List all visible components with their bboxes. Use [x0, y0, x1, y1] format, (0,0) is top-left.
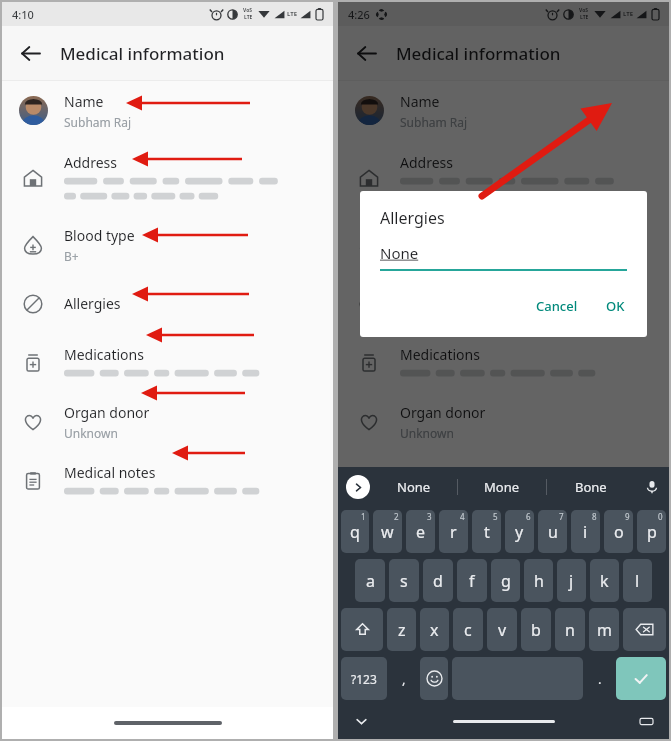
- button[interactable]: e: [406, 510, 435, 553]
- staticText: 0: [658, 511, 663, 522]
- button[interactable]: k: [590, 559, 619, 602]
- button[interactable]: Medical notes: [2, 451, 333, 510]
- staticText: z: [398, 619, 406, 641]
- button[interactable]: c: [453, 608, 483, 651]
- button[interactable]: q: [341, 510, 369, 553]
- staticText: h: [534, 570, 544, 592]
- staticText: b: [531, 619, 541, 641]
- button[interactable]: u: [538, 510, 567, 553]
- button[interactable]: b: [521, 608, 551, 651]
- staticText: d: [433, 570, 443, 592]
- staticText: a: [366, 570, 375, 592]
- other: Shift: [354, 621, 371, 638]
- staticText: v: [498, 619, 507, 641]
- button[interactable]: Bone: [547, 467, 635, 507]
- button[interactable]: Organ donor: [2, 392, 333, 451]
- staticText: B+: [64, 248, 79, 264]
- other: Emoji: [426, 670, 443, 687]
- button[interactable]: OK: [596, 289, 635, 323]
- button[interactable]: Back: [10, 33, 50, 73]
- button[interactable]: Medical notes: [338, 451, 669, 510]
- button[interactable]: Shift: [341, 608, 383, 651]
- button[interactable]: Expand toolbar: [346, 475, 370, 499]
- button[interactable]: t: [472, 510, 501, 553]
- staticText: Organ donor: [64, 403, 150, 422]
- staticText: OK: [606, 297, 625, 315]
- button[interactable]: Medications: [338, 333, 669, 392]
- staticText: Allergies: [380, 207, 445, 229]
- staticText: Blood type: [64, 226, 135, 245]
- button[interactable]: Enter: [616, 657, 666, 700]
- staticText: i: [583, 521, 588, 543]
- button[interactable]: z: [387, 608, 416, 651]
- button[interactable]: Medications: [2, 333, 333, 392]
- button[interactable]: d: [423, 559, 453, 602]
- button[interactable]: h: [524, 559, 553, 602]
- button[interactable]: Name: [2, 81, 333, 140]
- button[interactable]: v: [487, 608, 517, 651]
- button[interactable]: Voice input: [635, 467, 669, 507]
- staticText: c: [464, 619, 472, 641]
- staticText: n: [565, 619, 575, 641]
- button[interactable]: Blood type: [338, 215, 669, 274]
- staticText: Address: [64, 153, 117, 172]
- staticText: w: [381, 521, 394, 543]
- staticText: 3: [427, 511, 432, 522]
- button[interactable]: y: [505, 510, 534, 553]
- staticText: Medications: [400, 345, 480, 364]
- staticText: None: [380, 243, 419, 263]
- staticText: LTE: [580, 14, 589, 21]
- button[interactable]: n: [555, 608, 585, 651]
- button[interactable]: Back: [346, 33, 386, 73]
- button[interactable]: w: [373, 510, 402, 553]
- staticText: None: [397, 478, 431, 496]
- button[interactable]: Emoji: [420, 657, 448, 700]
- button[interactable]: Change keyboard: [623, 703, 669, 739]
- button[interactable]: .: [587, 657, 612, 700]
- button[interactable]: a: [355, 559, 385, 602]
- button[interactable]: Organ donor: [338, 392, 669, 451]
- staticText: j: [569, 570, 574, 592]
- button[interactable]: f: [457, 559, 487, 602]
- button[interactable]: r: [439, 510, 468, 553]
- button[interactable]: ,: [391, 657, 416, 700]
- button[interactable]: p: [637, 510, 666, 553]
- button[interactable]: m: [589, 608, 619, 651]
- staticText: Mone: [484, 478, 520, 496]
- staticText: Bone: [575, 478, 607, 496]
- button[interactable]: Cancel: [526, 289, 588, 323]
- button[interactable]: s: [389, 559, 419, 602]
- button[interactable]: g: [491, 559, 520, 602]
- staticText: LTE: [287, 10, 298, 18]
- staticText: q: [350, 521, 360, 543]
- staticText: Medical information: [60, 42, 225, 65]
- staticText: 2: [394, 511, 399, 522]
- button[interactable]: Name: [338, 81, 669, 140]
- button[interactable]: Mone: [458, 467, 546, 507]
- staticText: Subham Raj: [64, 114, 132, 130]
- staticText: Subham Raj: [400, 114, 468, 130]
- button[interactable]: i: [571, 510, 600, 553]
- button[interactable]: l: [623, 559, 652, 602]
- staticText: .: [598, 670, 602, 688]
- staticText: B+: [400, 248, 415, 264]
- button[interactable]: Backspace: [623, 608, 666, 651]
- button[interactable]: x: [420, 608, 449, 651]
- button[interactable]: o: [604, 510, 633, 553]
- staticText: Medications: [64, 345, 144, 364]
- button[interactable]: Address: [338, 140, 669, 215]
- button[interactable]: Allergies: [2, 274, 333, 333]
- button[interactable]: Address: [2, 140, 333, 215]
- button[interactable]: Blood type: [2, 215, 333, 274]
- staticText: ,: [402, 670, 406, 688]
- button[interactable]: Allergies: [338, 274, 669, 333]
- staticText: 1: [361, 511, 366, 522]
- button[interactable]: ?123: [341, 657, 387, 700]
- button[interactable]: Hide keyboard: [338, 703, 384, 739]
- staticText: 5: [493, 511, 498, 522]
- button[interactable]: j: [557, 559, 586, 602]
- staticText: 4:26: [348, 7, 370, 22]
- button[interactable]: None: [370, 467, 457, 507]
- staticText: Cancel: [536, 297, 578, 315]
